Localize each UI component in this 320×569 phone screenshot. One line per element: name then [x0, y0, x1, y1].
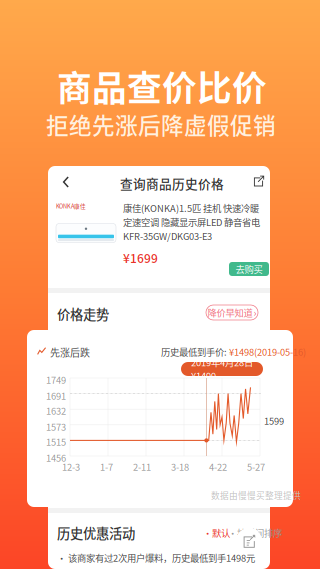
staticText: 2019年4月28日 ¥1499 [191, 355, 253, 382]
staticText: KONKA康佳 [56, 202, 86, 210]
staticText: 康佳(KONKA)1.5匹 挂机 快速冷暖 [123, 201, 259, 215]
button[interactable]: 降价早知道 [206, 305, 258, 320]
staticText: 5-27 [247, 460, 265, 473]
staticText: 1515 [46, 435, 66, 448]
staticText: › [253, 305, 256, 320]
staticText: 历史最低到手价: [161, 345, 227, 358]
staticText: 数据由慢慢买整理提供 [211, 489, 301, 501]
button[interactable]: •默认 [203, 526, 230, 539]
staticText: •默认 [203, 526, 230, 539]
button[interactable]: 去购买 [229, 262, 269, 276]
staticText: 价格走势 [57, 304, 109, 323]
staticText: ¥1498(2019-05-16) [227, 345, 306, 358]
staticText: 历史优惠活动 [57, 523, 135, 542]
staticText: 1691 [46, 389, 66, 402]
staticText: 1573 [46, 420, 66, 433]
staticText: 去购买 [235, 262, 262, 276]
staticText: 1599 [264, 414, 284, 427]
staticText: 3-18 [171, 460, 189, 473]
staticText: •按时间排序 [228, 526, 282, 539]
staticText: 查询商品历史价格 [120, 174, 224, 192]
staticText: 先涨后跌 [50, 345, 90, 359]
staticText: 1632 [46, 404, 66, 417]
staticText: 降价早知道 [207, 306, 252, 319]
staticText: 2-11 [133, 460, 151, 473]
staticText: 4-22 [209, 460, 227, 473]
staticText: • 该商家有过2次用户爆料，历史最低到手1498元 [57, 551, 255, 564]
staticText: 12-3 [62, 460, 80, 473]
staticText: 商品查价比价 [57, 61, 267, 111]
button[interactable]: 分享 [251, 171, 267, 191]
staticText: KFR-35GW/DKG03-E3 [123, 229, 212, 243]
button[interactable]: •按时间排序 [228, 526, 282, 539]
staticText: ¥1699 [123, 249, 158, 266]
staticText: 1-7 [100, 460, 113, 473]
staticText: 1749 [46, 373, 66, 386]
button[interactable]: 返回 [55, 170, 77, 194]
staticText: 1456 [46, 451, 66, 464]
staticText: 拒绝先涨后降虚假促销 [46, 108, 276, 141]
button[interactable]: 写爆料 [236, 528, 262, 554]
staticText: 定速空调 隐藏显示屏LED 静音省电 [123, 215, 260, 229]
